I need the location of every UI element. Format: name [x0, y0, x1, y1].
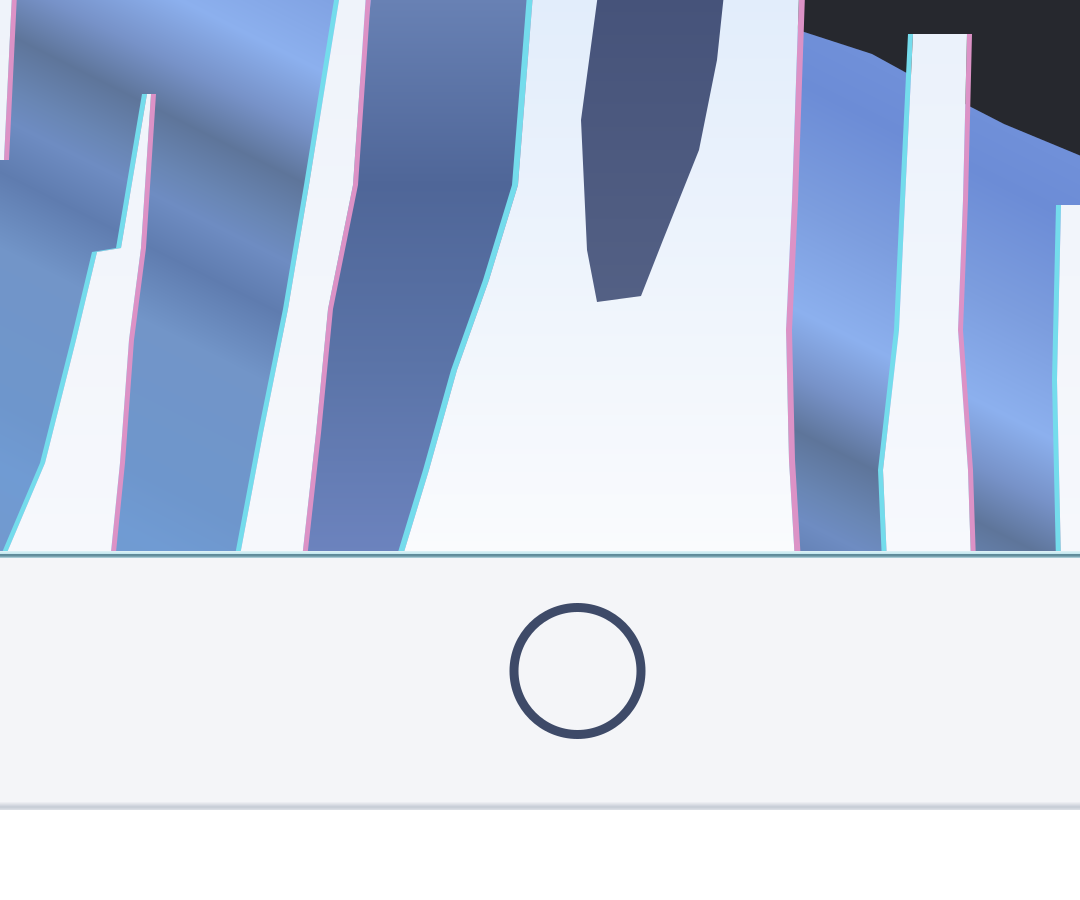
button[interactable]: Loading	[514, 606, 641, 736]
